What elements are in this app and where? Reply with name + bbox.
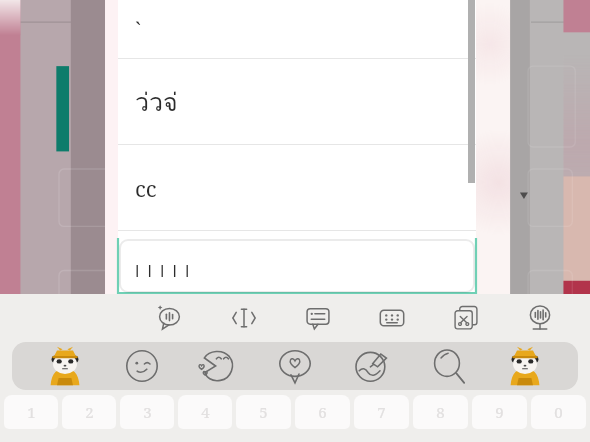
button[interactable]: 7 (354, 395, 409, 429)
staticText: 0 (554, 402, 563, 422)
button[interactable]: 6 (295, 395, 350, 429)
staticText: ן ן ן ן ן (135, 257, 192, 279)
button[interactable]: 5 (236, 395, 291, 429)
staticText: ` (135, 14, 142, 44)
button[interactable]: ` (118, 0, 476, 58)
staticText: 5 (259, 402, 268, 422)
staticText: 2 (85, 402, 94, 422)
staticText: ว่วจ่ (135, 82, 178, 122)
staticText: 4 (201, 402, 210, 422)
button[interactable]: 8 (413, 395, 468, 429)
staticText: 6 (318, 402, 327, 422)
button[interactable]: 4 (178, 395, 232, 429)
staticText: 9 (495, 402, 504, 422)
button[interactable]: ว่วจ่ (118, 59, 476, 144)
button[interactable]: Panda sticker (41, 342, 89, 390)
button[interactable]: Doodle sticker (348, 342, 396, 390)
staticText: 1 (27, 402, 36, 422)
button[interactable]: 2 (62, 395, 116, 429)
button[interactable]: 3 (120, 395, 174, 429)
button[interactable]: Move cursor (224, 298, 264, 338)
button[interactable]: Kiss face (194, 342, 242, 390)
staticText: cc (135, 173, 157, 203)
button[interactable]: Clipboard (446, 298, 486, 338)
button[interactable]: Voice changer (520, 298, 560, 338)
button[interactable]: Keyboard layout (372, 298, 412, 338)
button[interactable]: cc (118, 145, 476, 230)
staticText: 7 (377, 402, 386, 422)
button[interactable]: Panda sticker (501, 342, 549, 390)
button[interactable]: 9 (472, 395, 527, 429)
button[interactable]: Heart sticker (271, 342, 319, 390)
button[interactable]: 0 (531, 395, 586, 429)
staticText: 8 (436, 402, 445, 422)
button[interactable]: Search stickers (425, 342, 473, 390)
button[interactable]: Voice input (150, 298, 190, 338)
staticText: 3 (143, 402, 152, 422)
button[interactable]: Wink face (118, 342, 166, 390)
button[interactable]: Quick phrases (298, 298, 338, 338)
button[interactable]: ן ן ן ן ן (118, 238, 476, 294)
button[interactable]: 1 (4, 395, 58, 429)
